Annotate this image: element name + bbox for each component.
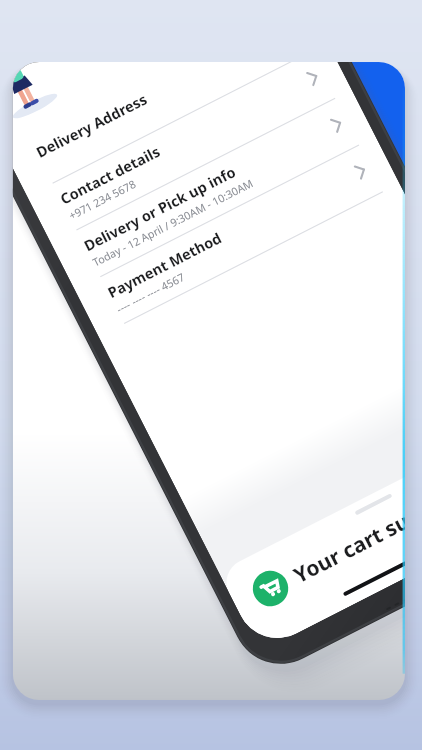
button[interactable]: [0, 0, 422, 750]
